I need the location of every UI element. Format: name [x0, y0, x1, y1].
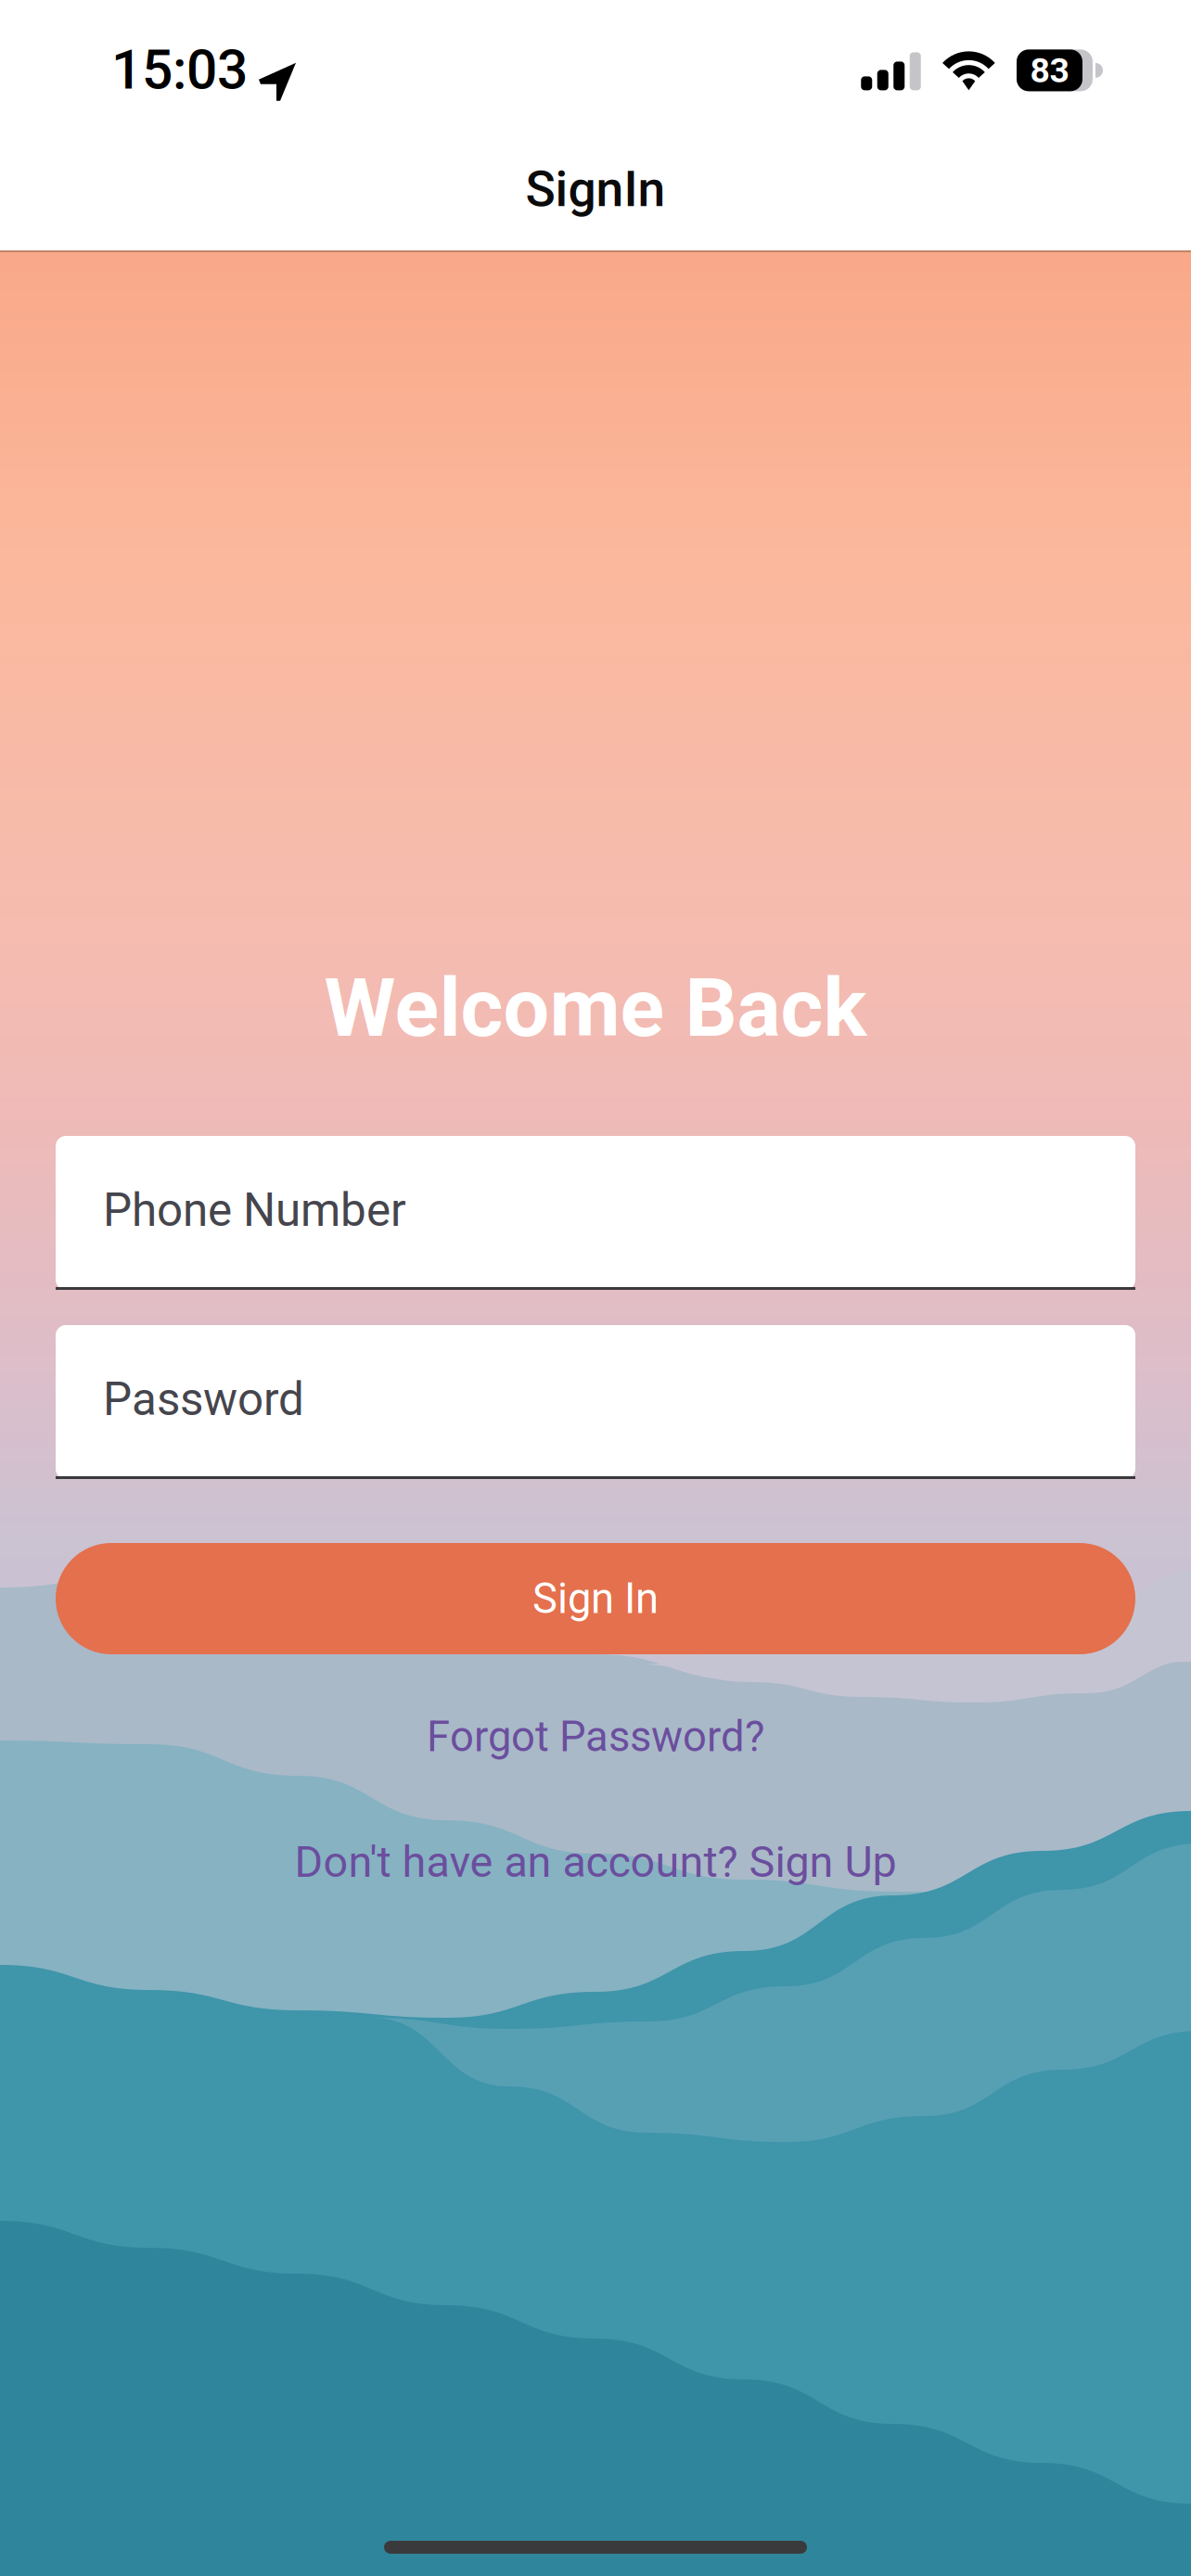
staticText: 15:03: [111, 38, 248, 102]
staticText: Phone Number: [103, 1183, 406, 1237]
staticText: Welcome Back: [324, 960, 867, 1056]
staticText: 83: [1030, 50, 1069, 91]
button[interactable]: Phone Number: [56, 1136, 1135, 1290]
staticText: Don't have an account? Sign Up: [295, 1837, 896, 1887]
staticText: Forgot Password?: [427, 1712, 764, 1761]
button[interactable]: Forgot Password?: [56, 1703, 1135, 1770]
staticText: Password: [103, 1373, 304, 1426]
button[interactable]: Sign In: [56, 1543, 1135, 1654]
staticText: SignIn: [525, 160, 666, 218]
staticText: Sign In: [532, 1574, 659, 1623]
button[interactable]: Don't have an account? Sign Up: [56, 1829, 1135, 1895]
button[interactable]: Password: [56, 1325, 1135, 1479]
